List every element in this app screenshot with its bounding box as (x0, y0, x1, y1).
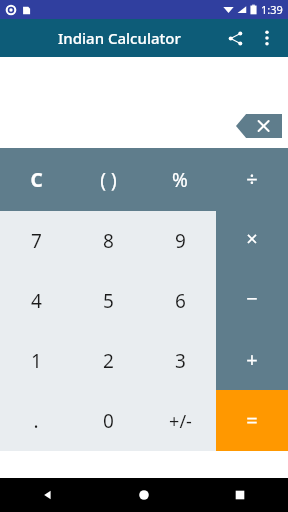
button[interactable]: +/- (144, 391, 216, 451)
staticText: 4 (31, 288, 42, 314)
staticText: Indian Calculator (58, 28, 181, 48)
button[interactable]: More options (252, 23, 282, 53)
staticText: . (33, 408, 39, 434)
staticText: 2 (103, 348, 114, 374)
staticText: 6 (175, 288, 186, 314)
staticText: 3 (175, 348, 186, 374)
button[interactable]: 0 (72, 391, 144, 451)
button[interactable]: Share (218, 21, 252, 55)
staticText: +/- (169, 409, 192, 434)
staticText: 0 (103, 408, 114, 434)
button[interactable]: 5 (72, 271, 144, 331)
staticText: 1 (31, 348, 42, 374)
staticText: % (172, 167, 188, 193)
button[interactable]: Home (96, 478, 192, 512)
button[interactable]: + (216, 329, 288, 390)
button[interactable]: 3 (144, 331, 216, 391)
staticText: ( ) (100, 167, 117, 193)
button[interactable]: 4 (0, 271, 72, 331)
staticText: × (246, 225, 258, 252)
button[interactable]: Back (0, 478, 96, 512)
button[interactable]: 8 (72, 211, 144, 271)
staticText: = (246, 407, 258, 434)
staticText: 8 (103, 228, 114, 254)
button[interactable]: 1 (0, 331, 72, 391)
button[interactable]: . (0, 391, 72, 451)
button[interactable]: 9 (144, 211, 216, 271)
staticText: 5 (103, 288, 114, 314)
staticText: C (30, 167, 43, 193)
staticText: ÷ (246, 165, 258, 192)
button[interactable]: = (216, 390, 288, 451)
button[interactable]: − (216, 268, 288, 329)
staticText: 1:39 (261, 2, 283, 17)
staticText: 7 (31, 228, 42, 254)
button[interactable]: Backspace (236, 114, 282, 138)
button[interactable]: ( ) (72, 148, 144, 211)
button[interactable]: × (216, 208, 288, 268)
staticText: + (246, 346, 258, 373)
button[interactable]: % (144, 148, 216, 211)
button[interactable]: ÷ (216, 148, 288, 208)
staticText: − (246, 285, 258, 312)
button[interactable]: 2 (72, 331, 144, 391)
staticText: 9 (175, 228, 186, 254)
button[interactable]: 6 (144, 271, 216, 331)
button[interactable]: 7 (0, 211, 72, 271)
button[interactable]: Recent apps (192, 478, 288, 512)
button[interactable]: C (0, 148, 72, 211)
